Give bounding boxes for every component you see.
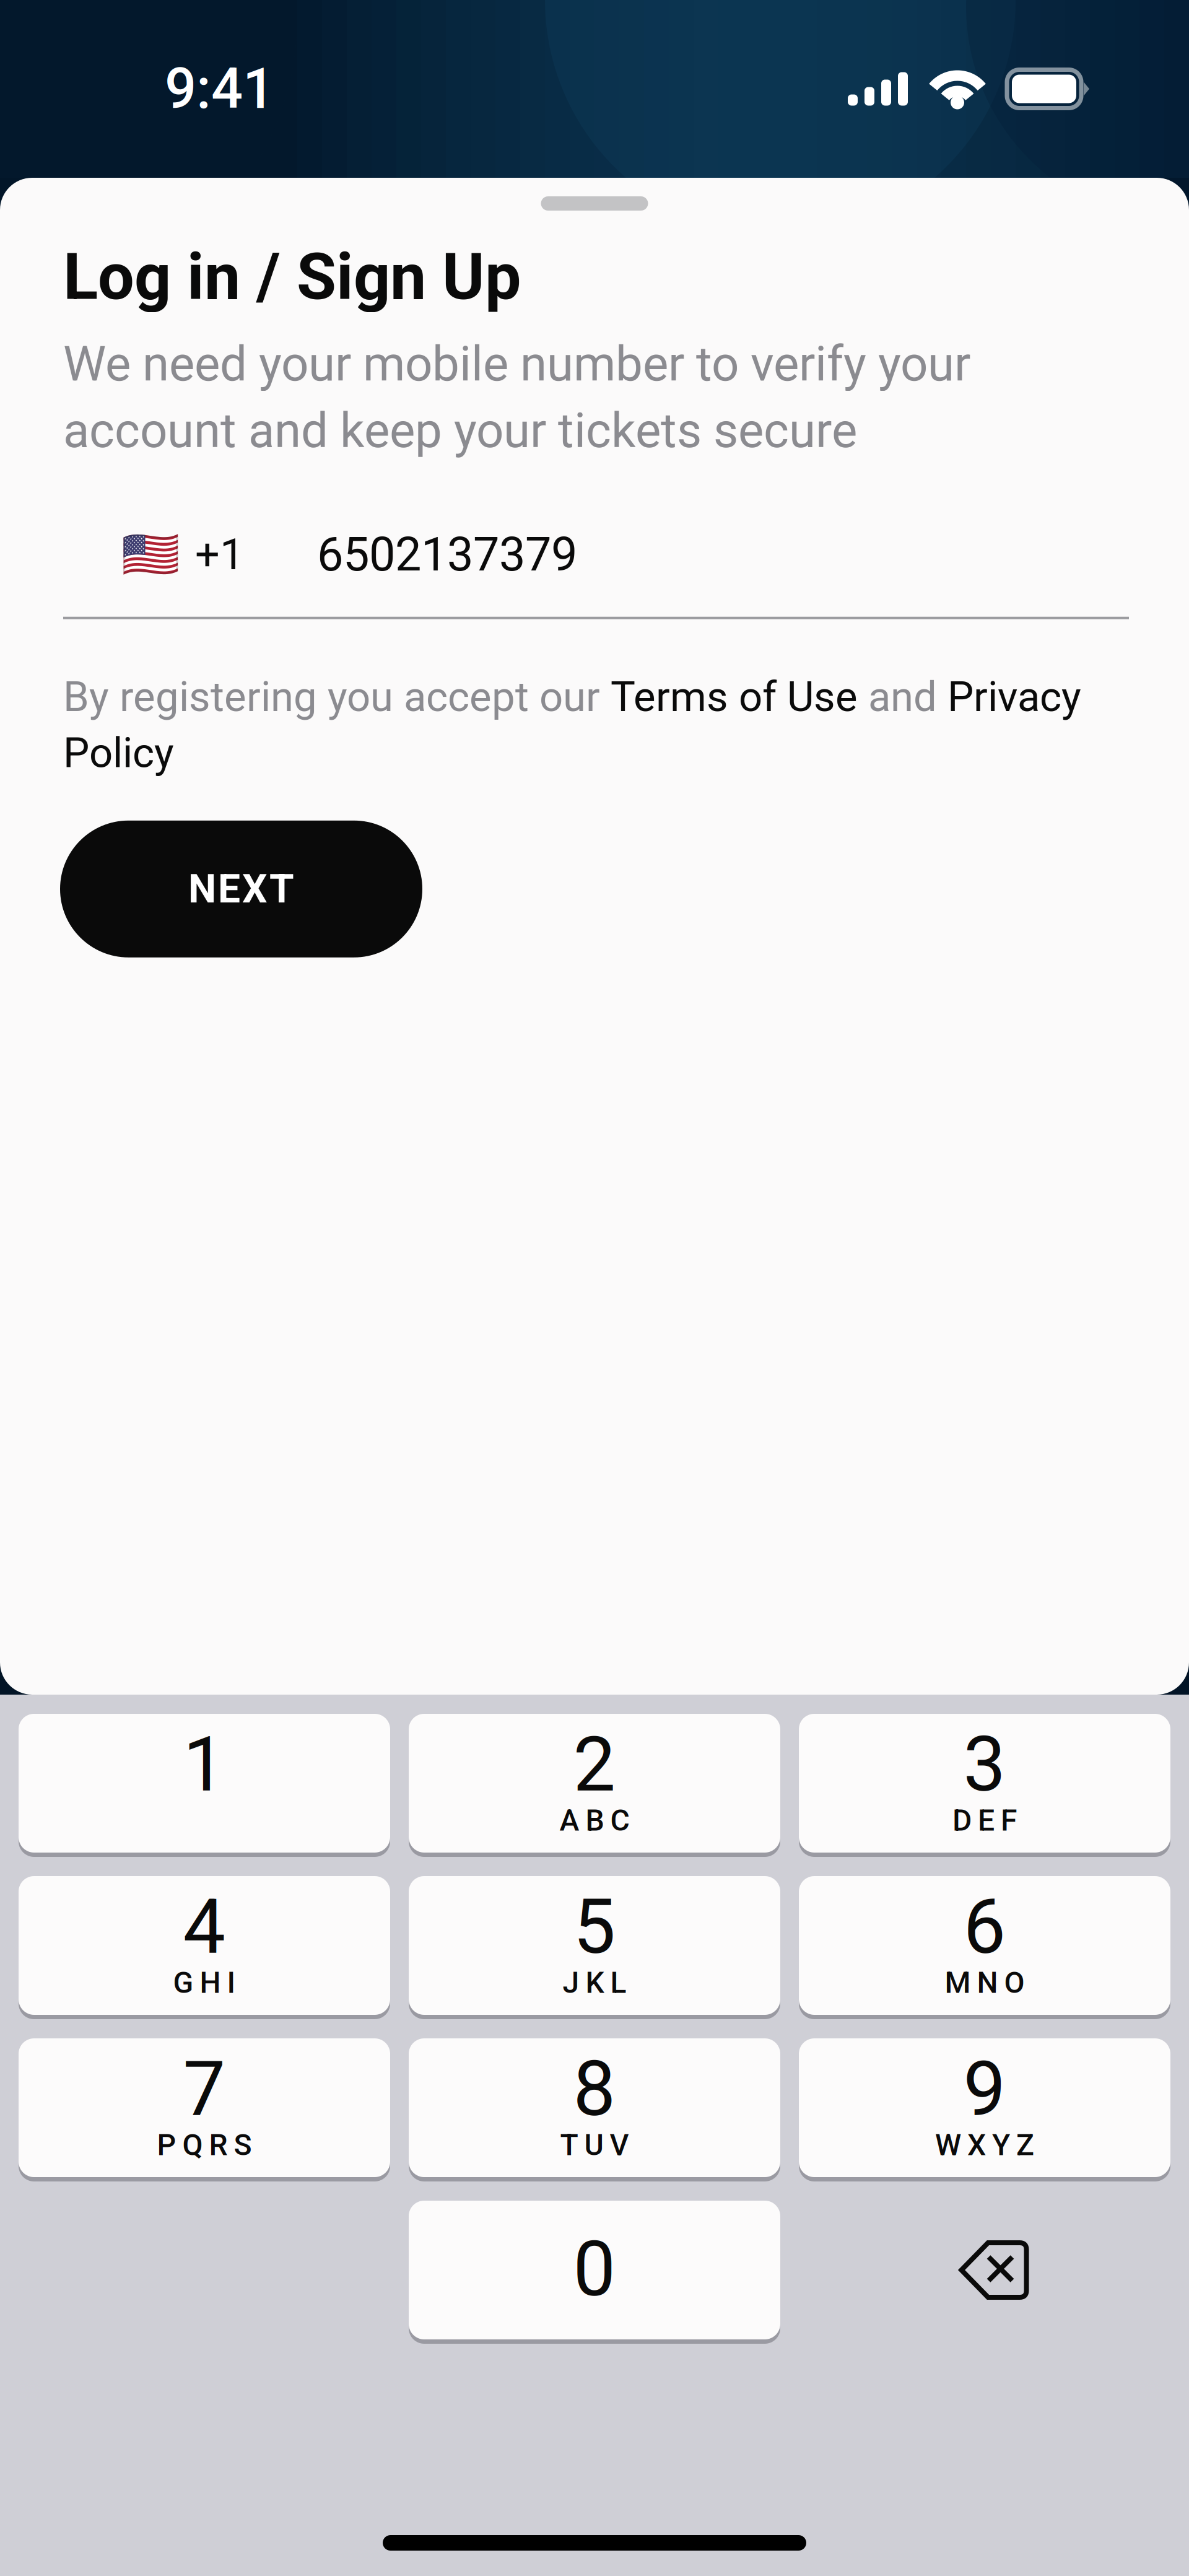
button[interactable]: 0 [409, 2201, 780, 2344]
button[interactable]: 7 [19, 2038, 390, 2181]
button[interactable]: 1 [19, 1714, 390, 1857]
staticText: We need your mobile number to verify you… [63, 336, 970, 392]
button[interactable]: 6 [799, 1876, 1170, 2019]
staticText: 9 [963, 2045, 1006, 2133]
button[interactable]: 2 [409, 1714, 780, 1857]
staticText: 6 [963, 1883, 1006, 1971]
staticText: PQRS [157, 2128, 252, 2162]
button[interactable]: NEXT [60, 821, 422, 957]
button[interactable]: 4 [19, 1876, 390, 2019]
button[interactable]: Country code, United States, plus 1 [121, 527, 244, 582]
staticText: DEF [952, 1803, 1017, 1838]
button[interactable]: Policy [63, 729, 174, 777]
staticText: 🇺🇸 [121, 527, 180, 582]
staticText: WXYZ [935, 2128, 1034, 2162]
staticText: By registering you accept our [63, 673, 611, 721]
staticText: JKL [563, 1965, 626, 2000]
staticText: 3 [963, 1720, 1006, 1809]
staticText: ABC [560, 1803, 629, 1838]
button[interactable]: 6502137379 [244, 527, 577, 582]
staticText: NEXT [188, 866, 294, 912]
staticText: 0 [573, 2225, 616, 2314]
staticText: Log in / Sign Up [63, 239, 521, 315]
staticText: 4 [183, 1883, 226, 1971]
staticText: +1 [195, 529, 244, 580]
staticText: Terms of Use [611, 673, 858, 721]
button[interactable]: Terms of Use [611, 673, 858, 721]
button[interactable]: 8 [409, 2038, 780, 2181]
staticText: 2 [573, 1720, 616, 1809]
staticText: 1 [183, 1720, 226, 1809]
staticText: GHI [173, 1965, 236, 2000]
staticText: Policy [63, 729, 174, 777]
button[interactable]: Privacy [947, 673, 1081, 721]
staticText: TUV [560, 2128, 629, 2162]
staticText: Privacy [947, 673, 1081, 721]
staticText: 5 [573, 1883, 616, 1971]
staticText: 8 [573, 2045, 616, 2133]
button[interactable]: 9 [799, 2038, 1170, 2181]
staticText: MNO [945, 1965, 1025, 2000]
button[interactable]: Delete [799, 2201, 1170, 2344]
staticText: account and keep your tickets secure [63, 402, 857, 459]
staticText: 6502137379 [317, 527, 577, 582]
staticText: 9:41 [165, 56, 274, 122]
staticText: 7 [183, 2045, 226, 2133]
button[interactable]: 3 [799, 1714, 1170, 1857]
button[interactable]: 5 [409, 1876, 780, 2019]
staticText: and [858, 673, 947, 721]
